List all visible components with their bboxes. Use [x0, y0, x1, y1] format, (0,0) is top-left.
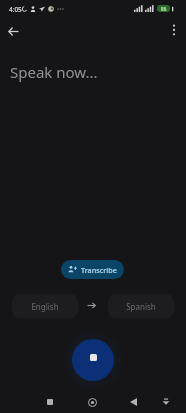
button[interactable]: Back — [0, 18, 26, 44]
button[interactable]: More options — [161, 17, 186, 43]
button[interactable]: Hide keyboard — [154, 390, 178, 413]
button[interactable]: Spanish — [108, 294, 174, 318]
button[interactable]: Recent apps — [38, 390, 62, 413]
button[interactable]: Back — [121, 390, 145, 413]
button[interactable]: Home — [80, 390, 104, 413]
staticText: Speak now... — [10, 62, 98, 82]
button[interactable]: English — [12, 294, 78, 318]
staticText: Spanish — [126, 301, 156, 312]
staticText: English — [31, 301, 59, 312]
button[interactable]: Transcribe — [61, 260, 124, 279]
staticText: Transcribe — [81, 265, 117, 275]
button[interactable]: Stop recording — [72, 339, 114, 381]
staticText: 4:05 — [9, 5, 22, 14]
staticText: 86 — [161, 6, 167, 12]
